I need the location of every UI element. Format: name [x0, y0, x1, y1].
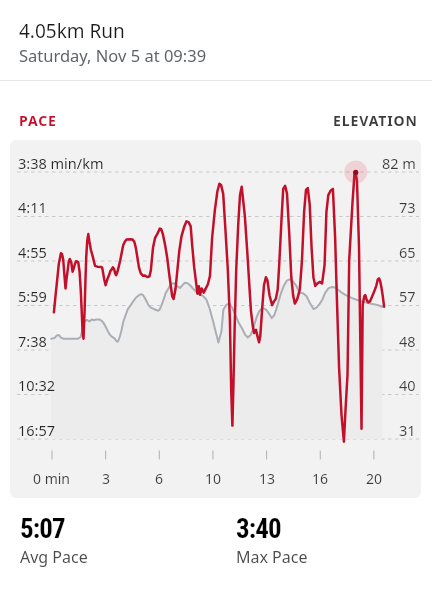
staticText: 0 min	[33, 469, 71, 488]
staticText: 13	[259, 469, 276, 488]
staticText: 65	[399, 242, 416, 262]
staticText: 3:38 min/km	[18, 153, 104, 173]
staticText: Saturday, Nov 5 at 09:39	[19, 44, 207, 66]
staticText: 7:38	[18, 331, 47, 351]
staticText: Max Pace	[236, 546, 308, 568]
staticText: 20	[366, 469, 383, 488]
staticText: 3:40	[236, 513, 281, 545]
staticText: 10:32	[18, 375, 56, 395]
staticText: 57	[399, 286, 416, 306]
staticText: 40	[399, 375, 416, 395]
staticText: 4:11	[18, 197, 47, 217]
staticText: 16:57	[18, 420, 56, 440]
button[interactable]: 3:40	[236, 513, 308, 568]
button[interactable]: 5:07	[20, 513, 236, 568]
staticText: 5:59	[18, 286, 47, 306]
button[interactable]: ELEVATION	[333, 111, 418, 130]
staticText: 10	[205, 469, 222, 488]
staticText: 16	[312, 469, 329, 488]
staticText: 48	[399, 331, 416, 351]
staticText: 31	[399, 420, 416, 440]
staticText: Avg Pace	[20, 546, 88, 568]
staticText: 4:55	[18, 242, 47, 262]
staticText: 73	[399, 197, 416, 217]
staticText: 82 m	[382, 153, 416, 173]
staticText: 6	[155, 469, 164, 488]
staticText: 3	[102, 469, 111, 488]
staticText: 5:07	[20, 513, 65, 545]
button[interactable]: PACE	[19, 111, 57, 130]
staticText: 4.05km Run	[19, 18, 125, 44]
